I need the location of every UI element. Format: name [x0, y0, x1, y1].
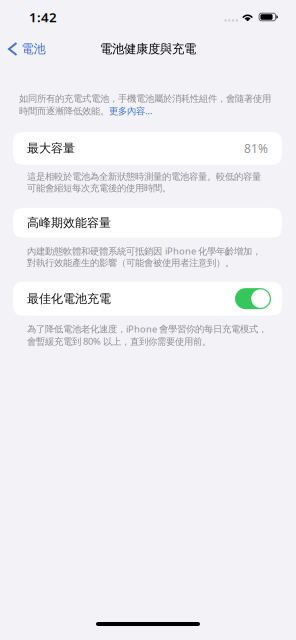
- button[interactable]: 最佳化電池充電: [13, 282, 282, 316]
- button[interactable]: 高峰期效能容量: [13, 208, 282, 238]
- staticText: 為了降低電池老化速度，iPhone 會學習你的每日充電模式，會暫緩充電到 80%…: [27, 323, 267, 347]
- staticText: 電池健康度與充電: [100, 41, 196, 57]
- staticText: 1:42: [29, 8, 57, 26]
- staticText: 最大容量: [27, 141, 75, 156]
- staticText: 內建動態軟體和硬體系統可抵銷因 iPhone 化學年齡增加，對執行效能產生的影響…: [27, 245, 261, 269]
- staticText: 高峰期效能容量: [27, 215, 111, 230]
- staticText: 81%: [244, 140, 268, 156]
- staticText: 最佳化電池充電: [27, 291, 111, 306]
- button[interactable]: 最大容量: [13, 132, 282, 165]
- button[interactable]: 電池: [0, 36, 53, 62]
- staticText: 電池: [21, 41, 45, 57]
- staticText: 這是相較於電池為全新狀態時測量的電池容量。較低的容量可能會縮短每次充電後的使用時…: [27, 171, 261, 194]
- staticText: 如同所有的充電式電池，手機電池屬於消耗性組件，會隨著使用時間而逐漸降低效能。更多…: [19, 93, 271, 117]
